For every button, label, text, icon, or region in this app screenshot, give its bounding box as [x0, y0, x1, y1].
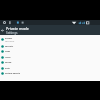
button[interactable]: Users: [0, 55, 100, 60]
staticText: Apps: [5, 50, 10, 53]
button[interactable]: Date: [0, 66, 100, 71]
staticText: Tap to set up: [5, 40, 15, 42]
staticText: Private mode: [6, 26, 29, 31]
staticText: Security: [5, 45, 14, 48]
staticText: Date: [5, 67, 10, 70]
staticText: Settings: [6, 31, 18, 35]
button[interactable]: Privacy: [0, 35, 100, 43]
button[interactable]: Sound: [0, 60, 100, 65]
button[interactable]: Apps: [0, 49, 100, 54]
button[interactable]: Security: [0, 44, 100, 49]
staticText: Privacy: [5, 37, 13, 40]
staticText: Sound: [5, 61, 12, 64]
button[interactable]: Navigate up: [0, 28, 5, 33]
staticText: System update: [5, 72, 20, 75]
button[interactable]: System update: [0, 71, 100, 76]
staticText: Users: [5, 56, 11, 59]
